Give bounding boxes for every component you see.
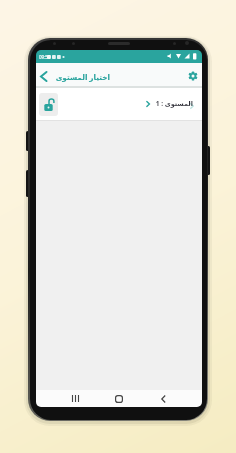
button[interactable]: [187, 70, 199, 82]
button[interactable]: اختيار المستوى: [39, 71, 110, 82]
button[interactable]: [60, 390, 90, 407]
staticText: اختيار المستوى: [55, 72, 110, 82]
button[interactable]: المستوى : 1: [36, 88, 202, 120]
staticText: 09:59: [39, 54, 51, 60]
staticText: المستوى : 1: [155, 99, 193, 108]
button[interactable]: [148, 390, 178, 407]
button[interactable]: [104, 390, 134, 407]
